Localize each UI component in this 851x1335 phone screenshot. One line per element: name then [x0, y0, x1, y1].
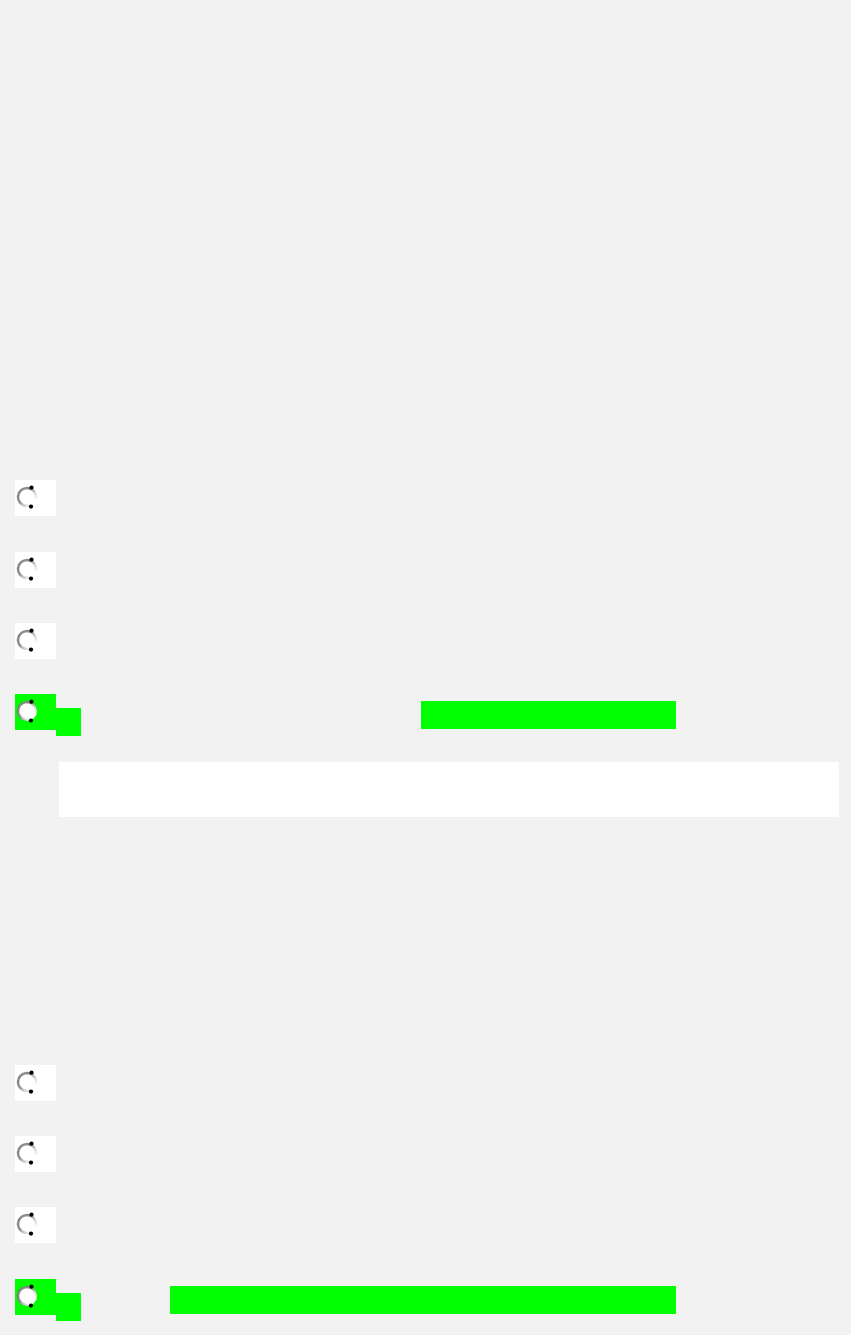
button[interactable]: Option 7	[0, 1207, 851, 1243]
button[interactable]: Option 5	[0, 1065, 851, 1101]
button[interactable]: Option 2	[0, 552, 851, 588]
button[interactable]: Option 4, selected	[0, 694, 851, 730]
button[interactable]: Option 3	[0, 623, 851, 659]
button[interactable]: Option 8, selected	[0, 1279, 851, 1315]
button[interactable]: Option 6	[0, 1136, 851, 1172]
button[interactable]: Option 1	[0, 480, 851, 516]
